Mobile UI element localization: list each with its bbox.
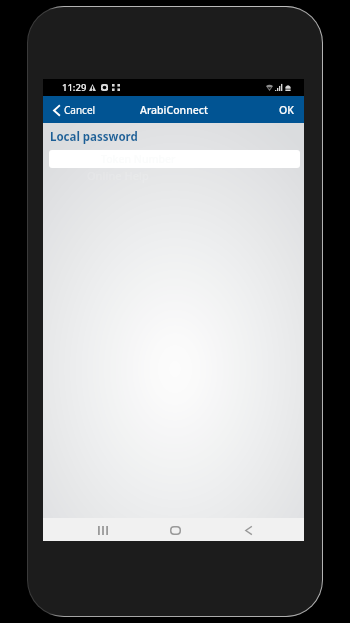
button[interactable]: Cancel	[43, 99, 104, 121]
staticText: ArabiConnect	[140, 103, 208, 117]
staticText: OK	[279, 103, 294, 117]
button[interactable]: Back	[223, 519, 273, 542]
staticText: 11:29	[62, 81, 87, 94]
staticText: Local password	[50, 129, 138, 145]
button[interactable]: OK	[267, 99, 304, 121]
button[interactable]: Recent apps	[78, 519, 128, 542]
button[interactable]: Home	[150, 519, 200, 542]
staticText: Cancel	[64, 103, 96, 117]
